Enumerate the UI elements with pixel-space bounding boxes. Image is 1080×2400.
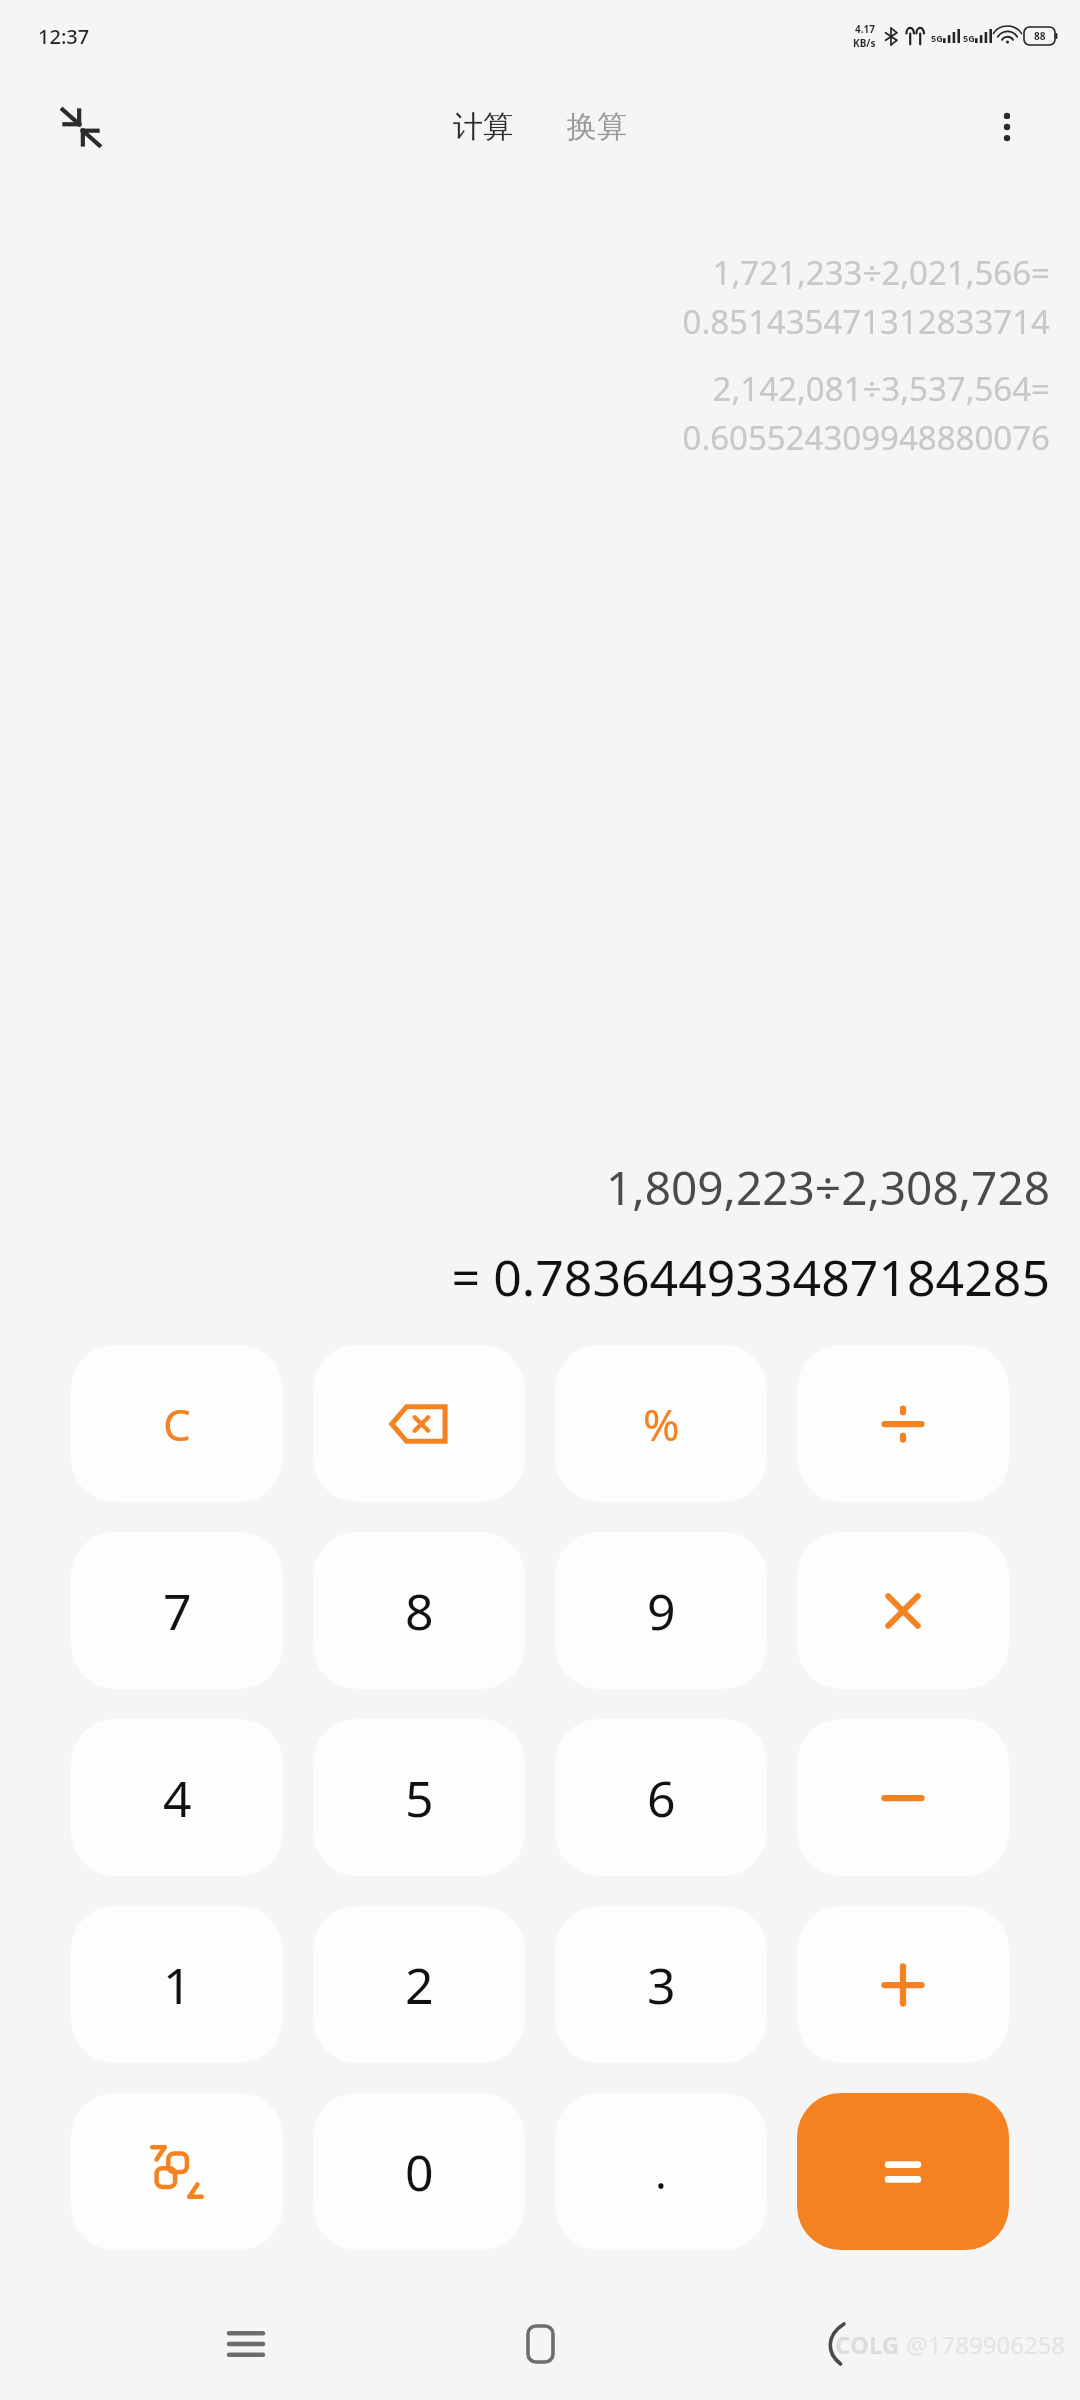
staticText: 计算	[453, 108, 513, 146]
button[interactable]: Minus	[797, 1719, 1009, 1876]
button[interactable]: 3	[555, 1906, 767, 2063]
staticText: 0	[405, 2138, 434, 2206]
button[interactable]: Back	[786, 2296, 882, 2392]
button[interactable]: Recents	[198, 2296, 294, 2392]
button[interactable]: Collapse	[44, 90, 118, 164]
staticText: 5	[405, 1764, 434, 1832]
staticText: 7	[163, 1577, 192, 1645]
staticText: 5G	[931, 32, 943, 44]
staticText: 1,721,233÷2,021,566=	[712, 250, 1050, 295]
staticText: 4	[163, 1764, 192, 1832]
staticText: 1,809,223÷2,308,728	[606, 1156, 1050, 1219]
button[interactable]: Home	[492, 2296, 588, 2392]
staticText: 12:37	[38, 23, 90, 50]
staticText: %	[643, 1394, 680, 1454]
button[interactable]: Backspace	[313, 1345, 525, 1502]
button[interactable]: C	[71, 1345, 283, 1502]
staticText: .	[655, 2142, 667, 2202]
staticText: 1	[163, 1951, 192, 2019]
button[interactable]: More options	[972, 92, 1042, 162]
button[interactable]: 6	[555, 1719, 767, 1876]
button[interactable]: Plus	[797, 1906, 1009, 2063]
staticText: 8	[405, 1577, 434, 1645]
staticText: C	[163, 1394, 191, 1454]
staticText: 换算	[567, 108, 627, 146]
button[interactable]: .	[555, 2093, 767, 2250]
button[interactable]: 8	[313, 1532, 525, 1689]
button[interactable]: 5	[313, 1719, 525, 1876]
staticText: 0.851435471312833714	[682, 299, 1050, 344]
staticText: 3	[647, 1951, 676, 2019]
button[interactable]: 7	[71, 1532, 283, 1689]
staticText: 9	[647, 1577, 676, 1645]
button[interactable]: Unit convert	[71, 2093, 283, 2250]
staticText: 6	[647, 1764, 676, 1832]
staticText: @1789906258	[900, 2328, 1066, 2361]
staticText: = 0.783644933487184285	[451, 1243, 1050, 1311]
staticText: 4.17	[855, 22, 875, 36]
staticText: 2,142,081÷3,537,564=	[712, 366, 1050, 411]
staticText: 5G	[963, 32, 975, 44]
button[interactable]: 计算	[439, 100, 527, 154]
button[interactable]: Multiply	[797, 1532, 1009, 1689]
button[interactable]: %	[555, 1345, 767, 1502]
button[interactable]: 0	[313, 2093, 525, 2250]
staticText: 88	[1034, 29, 1046, 43]
button[interactable]: 1	[71, 1906, 283, 2063]
button[interactable]: 4	[71, 1719, 283, 1876]
staticText: COLG	[835, 2328, 900, 2361]
button[interactable]: Equals	[797, 2093, 1009, 2250]
button[interactable]: 2	[313, 1906, 525, 2063]
button[interactable]: 9	[555, 1532, 767, 1689]
staticText: KB/s	[853, 36, 876, 50]
button[interactable]: Divide	[797, 1345, 1009, 1502]
staticText: 0.605524309948880076	[682, 415, 1050, 460]
button[interactable]: 换算	[553, 100, 641, 154]
staticText: 2	[405, 1951, 434, 2019]
